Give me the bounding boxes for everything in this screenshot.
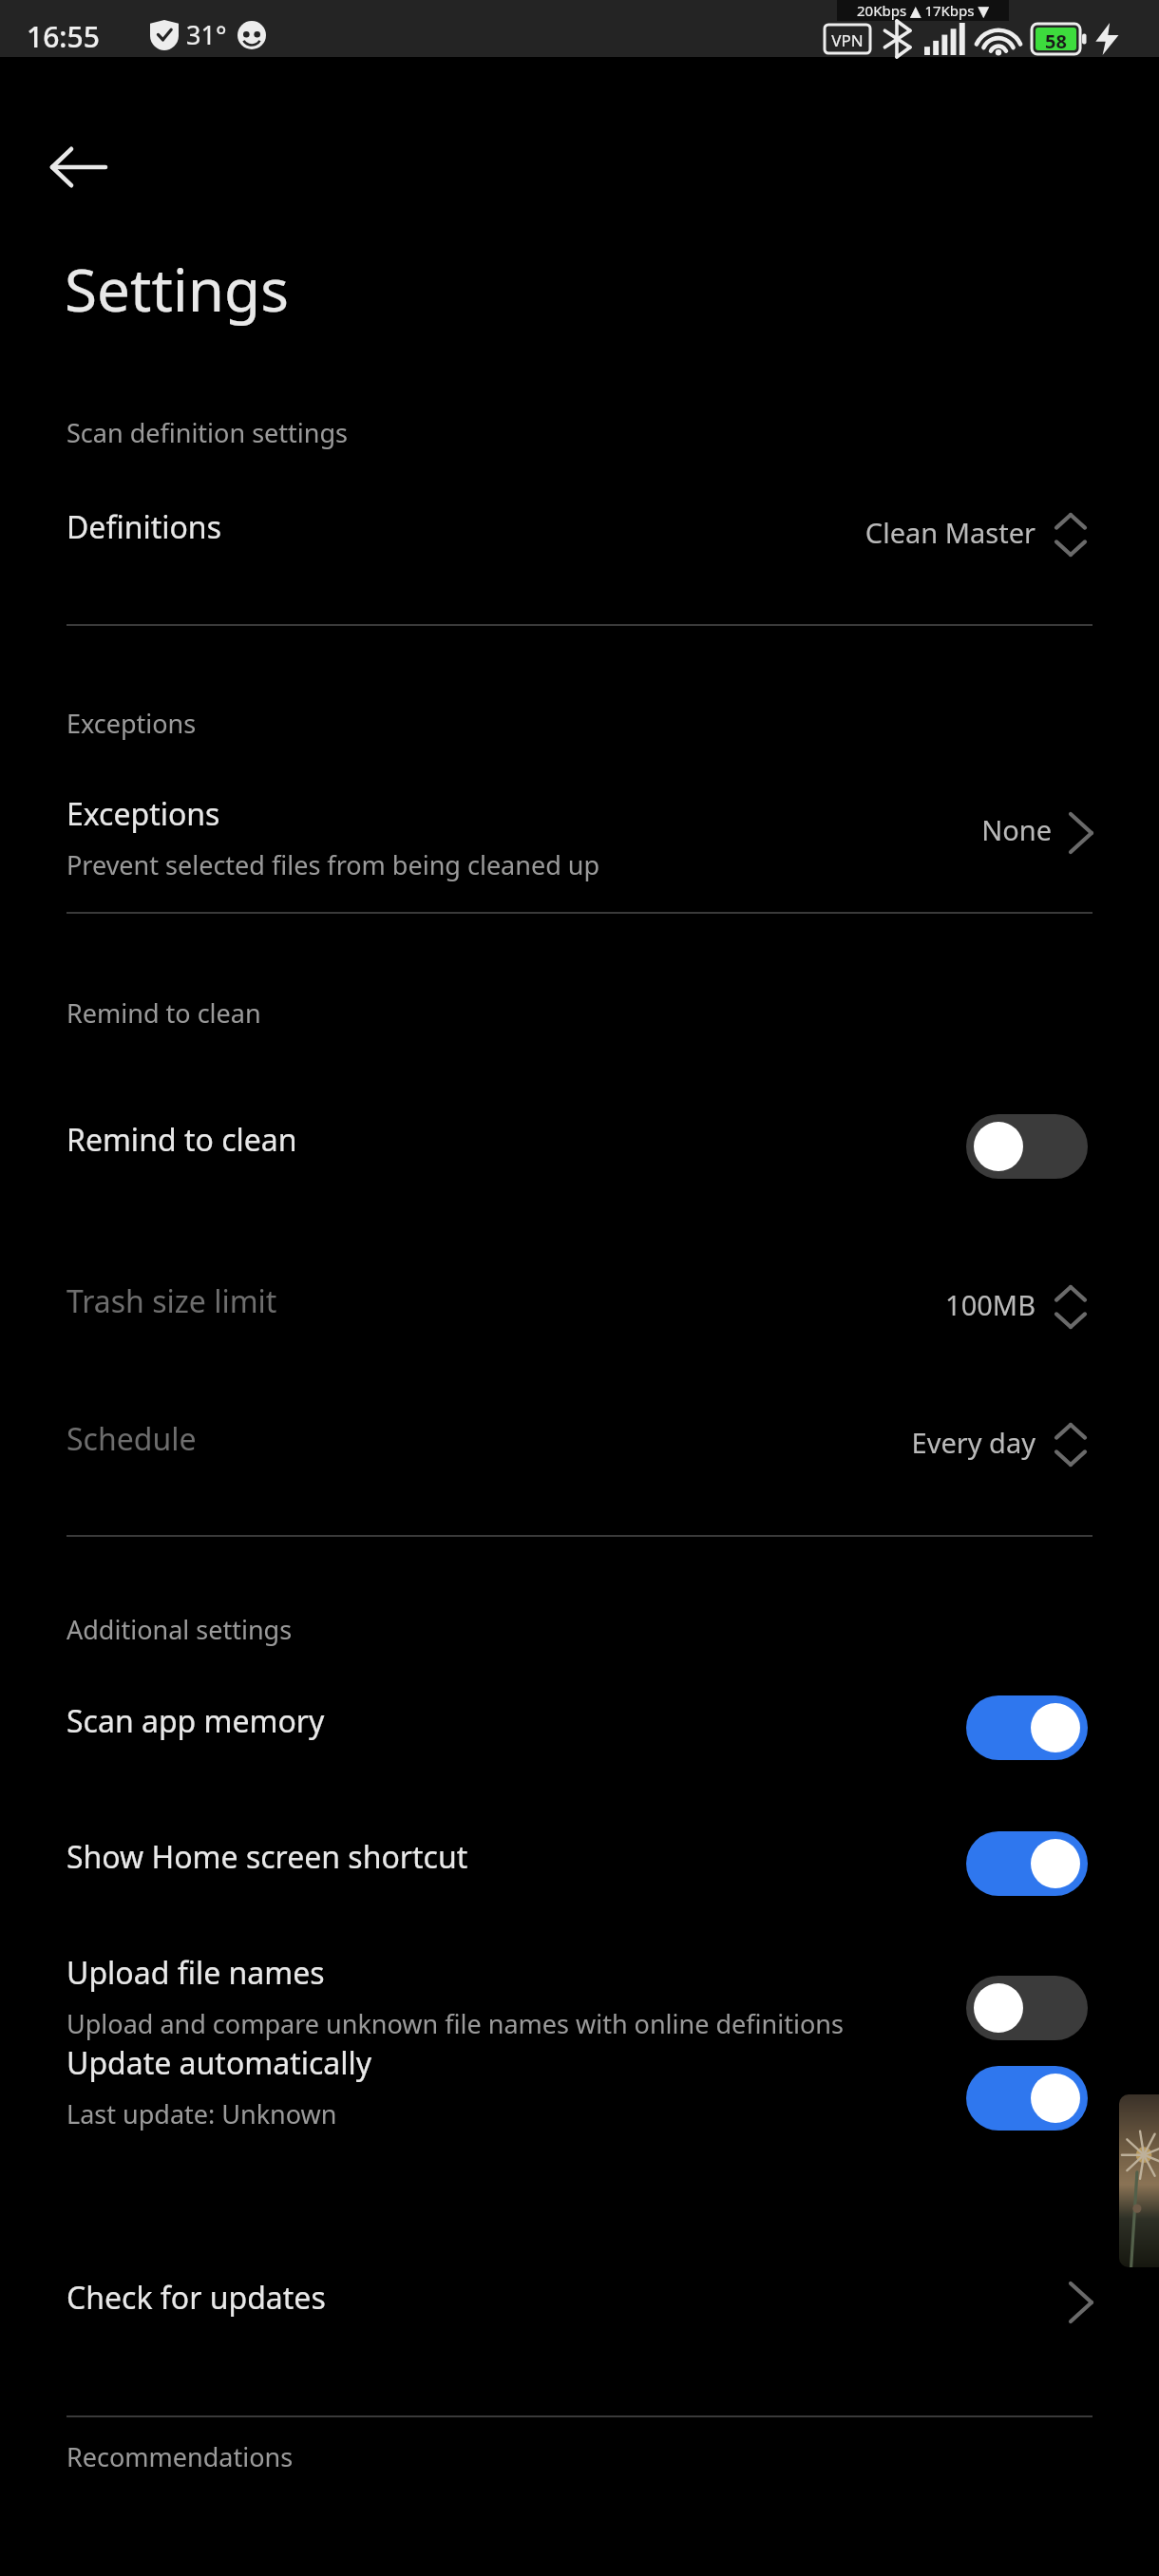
button[interactable]: Remind to clean xyxy=(0,1090,1159,1204)
staticText: 20Kbps ▲ 17Kbps ▼ xyxy=(857,1,989,20)
button[interactable]: Off xyxy=(966,1114,1088,1179)
staticText: Exceptions xyxy=(66,793,220,835)
staticText: Remind to clean xyxy=(66,995,261,1031)
staticText: Clean Master xyxy=(475,514,1035,551)
button[interactable]: Upload file names xyxy=(0,1938,1159,2080)
staticText: Check for updates xyxy=(66,2277,326,2319)
button[interactable]: Back xyxy=(34,123,122,211)
staticText: Upload file names xyxy=(66,1952,325,1994)
button[interactable]: On xyxy=(966,2066,1088,2131)
staticText: Schedule xyxy=(66,1418,197,1460)
staticText: Last update: Unknown xyxy=(66,2096,337,2131)
button[interactable]: On xyxy=(966,1831,1088,1896)
button[interactable]: Check for updates xyxy=(0,2256,1159,2360)
button[interactable]: Off xyxy=(966,1976,1088,2040)
staticText: Settings xyxy=(65,249,289,329)
staticText: 58 xyxy=(1032,28,1080,54)
staticText: Every day xyxy=(475,1424,1035,1461)
button[interactable]: Update automatically xyxy=(0,2028,1159,2170)
button[interactable] xyxy=(0,1752,1159,1995)
staticText: Show Home screen shortcut xyxy=(66,1836,468,1878)
button[interactable]: Show Home screen shortcut xyxy=(0,1808,1159,1922)
staticText: 16:55 xyxy=(27,17,100,56)
staticText: Scan definition settings xyxy=(66,415,348,450)
staticText: Update automatically xyxy=(66,2042,372,2084)
button[interactable]: On xyxy=(966,1695,1088,1760)
button[interactable]: Exceptions xyxy=(0,779,1159,921)
staticText: Definitions xyxy=(66,506,221,548)
staticText: 31° xyxy=(186,17,227,52)
staticText: Recommendations xyxy=(66,2439,294,2474)
staticText: Prevent selected files from being cleane… xyxy=(66,847,600,882)
staticText: Upload and compare unknown file names wi… xyxy=(66,2006,844,2041)
staticText: Exceptions xyxy=(66,706,197,741)
staticText: Scan app memory xyxy=(66,1700,325,1742)
staticText: Additional settings xyxy=(66,1612,293,1647)
staticText: Trash size limit xyxy=(66,1280,277,1322)
button[interactable]: Floating image xyxy=(1119,2094,1159,2267)
button[interactable]: Definitions xyxy=(0,480,1159,594)
button[interactable]: Schedule xyxy=(0,1390,1159,1504)
button[interactable]: Trash size limit xyxy=(0,1252,1159,1366)
staticText: Remind to clean xyxy=(66,1119,297,1161)
staticText: None xyxy=(475,811,1052,848)
button[interactable]: Scan app memory xyxy=(0,1672,1159,1786)
staticText: 100MB xyxy=(475,1286,1035,1323)
staticText: VPN xyxy=(829,29,865,51)
